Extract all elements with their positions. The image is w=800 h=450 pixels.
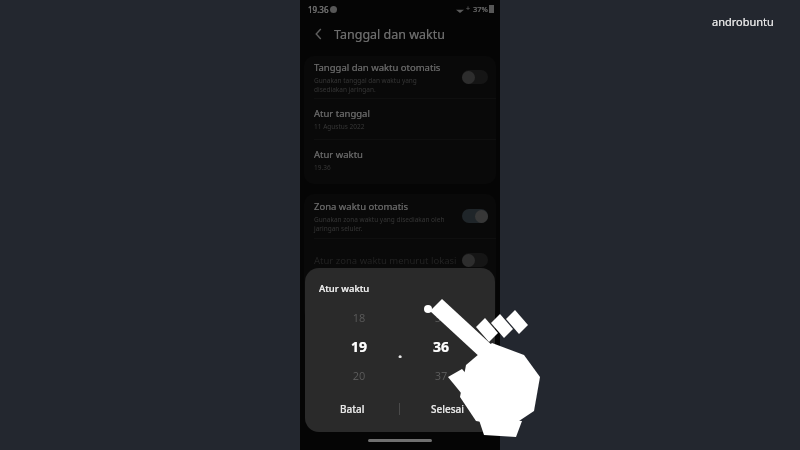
staticText: androbuntu — [712, 14, 774, 29]
staticText: . — [398, 342, 403, 362]
button[interactable]: 18 — [341, 308, 377, 388]
staticText: Atur waktu — [319, 282, 370, 295]
button[interactable]: Atur waktu — [304, 140, 496, 180]
staticText: Selesai — [431, 402, 464, 416]
button[interactable]: Toggle — [462, 70, 488, 84]
staticText: Atur tanggal — [314, 107, 370, 120]
staticText: Atur zona waktu menurut lokasi — [314, 254, 462, 267]
staticText: 18 — [341, 310, 377, 325]
staticText: Tanggal dan waktu — [334, 26, 445, 43]
button[interactable]: Batal — [305, 396, 399, 422]
staticText: 11 Agustus 2022 — [314, 122, 365, 131]
staticText: disediakan jaringan. — [314, 85, 376, 94]
staticText: 37% — [473, 4, 488, 14]
button[interactable]: Atur zona waktu menurut lokasi — [304, 239, 496, 281]
staticText: Batal — [340, 402, 365, 416]
staticText: 19.36 — [308, 4, 329, 15]
button[interactable]: Toggle — [462, 209, 488, 223]
staticText: 35 — [423, 310, 459, 325]
button[interactable]: Toggle — [462, 253, 488, 267]
staticText: Zona waktu otomatis — [314, 200, 409, 213]
staticText: jaringan seluler. — [314, 224, 363, 233]
button[interactable]: 35 — [423, 308, 459, 388]
button[interactable]: Zona waktu otomatis — [304, 194, 496, 238]
button[interactable]: Back — [308, 23, 330, 45]
button[interactable]: Tanggal dan waktu otomatis — [304, 56, 496, 98]
staticText: 19.36 — [314, 163, 331, 172]
staticText: 36 — [423, 337, 459, 356]
staticText: 20 — [341, 368, 377, 383]
button[interactable]: Atur tanggal — [304, 99, 496, 139]
staticText: Atur waktu — [314, 148, 363, 161]
staticText: Tanggal dan waktu otomatis — [314, 61, 441, 74]
staticText: 19 — [341, 337, 377, 356]
button[interactable]: Selesai — [400, 396, 495, 422]
staticText: 37 — [423, 368, 459, 383]
staticText: Gunakan zona waktu yang disediakan oleh — [314, 215, 445, 224]
staticText: Gunakan tanggal dan waktu yang — [314, 76, 417, 85]
staticText: + — [466, 4, 471, 14]
